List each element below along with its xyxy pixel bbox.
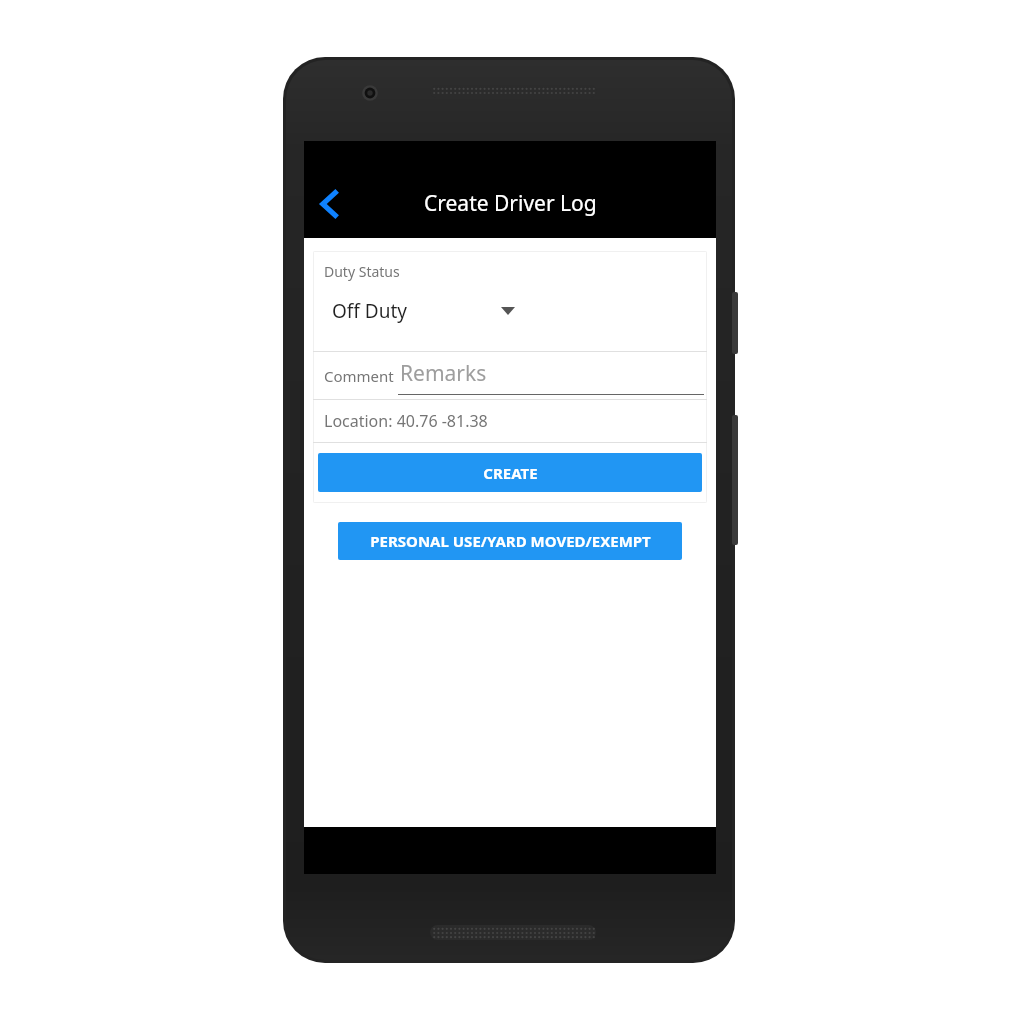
staticText: Location: 40.76 -81.38	[324, 410, 488, 432]
button[interactable]: Location: 40.76 -81.38	[313, 400, 707, 442]
staticText: Create Driver Log	[424, 189, 597, 218]
staticText: Duty Status	[324, 262, 400, 281]
button[interactable]: Back	[304, 176, 356, 232]
staticText: PERSONAL USE/YARD MOVED/EXEMPT	[370, 531, 651, 551]
staticText: Remarks	[400, 359, 487, 388]
staticText: Off Duty	[332, 298, 408, 324]
button[interactable]: Duty Status	[313, 251, 707, 351]
button[interactable]: PERSONAL USE/YARD MOVED/EXEMPT	[338, 522, 682, 560]
button[interactable]: CREATE	[318, 453, 702, 492]
staticText: CREATE	[483, 463, 538, 483]
button[interactable]: Comment	[313, 352, 707, 399]
staticText: Comment	[324, 366, 394, 386]
